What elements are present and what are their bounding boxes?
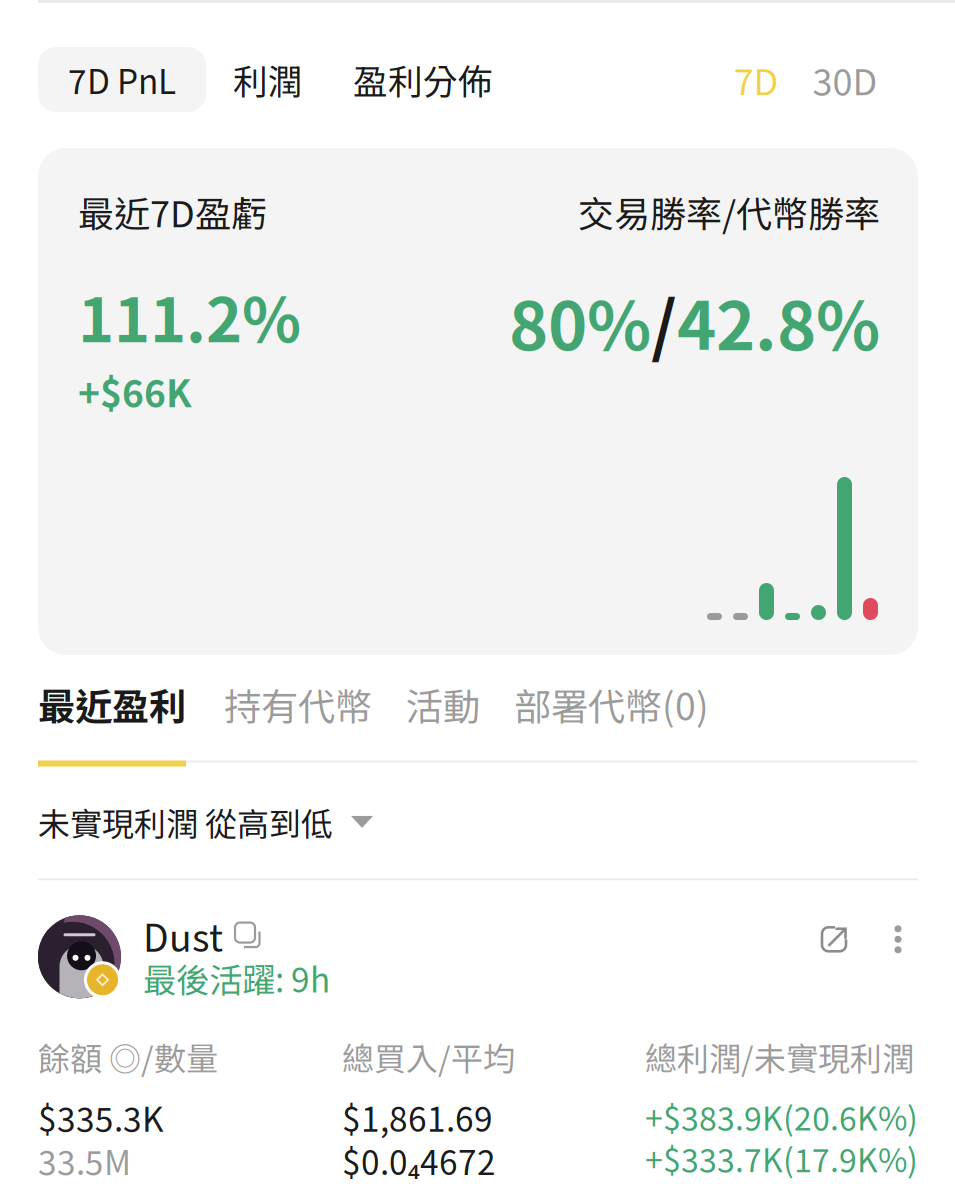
staticText: 未實現利潤 從高到低 [38,804,333,839]
staticText: 80% [509,285,651,357]
staticText: $1,861.69 [342,1099,493,1135]
staticText: 部署代幣(0) [514,684,709,724]
button[interactable]: Open externally [810,915,858,963]
staticText: 最近盈利 [38,684,186,724]
staticText: 持有代幣 [224,684,372,724]
staticText: 利潤 [233,61,303,98]
button[interactable]: 盈利分佈 [330,47,516,112]
staticText: Dust [143,915,223,956]
button[interactable]: More options [878,915,918,963]
staticText: 30D [812,60,877,99]
staticText: 餘額 ◎/數量 [38,1039,218,1074]
staticText: 7D PnL [68,61,176,98]
button[interactable]: 7D [709,47,803,112]
staticText: +$66K [78,371,192,411]
staticText: 7D [733,60,778,99]
staticText: $335.3K [38,1099,164,1135]
staticText: 總買入/平均 [342,1039,515,1074]
button[interactable]: 30D [803,47,887,112]
staticText: 42.8% [677,285,880,357]
button[interactable]: 利潤 [206,47,330,112]
staticText: 盈利分佈 [353,61,493,98]
staticText: / [651,285,677,357]
button[interactable]: 活動 [406,684,514,724]
button[interactable]: 7D PnL [38,47,206,112]
staticText: 33.5M [38,1142,131,1178]
staticText: 111.2% [78,282,301,349]
staticText: 總利潤/未實現利潤 [645,1039,914,1074]
staticText: +$333.7K(17.9K%) [645,1141,918,1176]
staticText: +$383.9K(20.6K%) [645,1099,918,1134]
button[interactable]: 未實現利潤 從高到低 [38,804,918,839]
staticText: 最近7D盈虧 [78,192,267,231]
staticText: 最後活躍: 9h [143,960,330,996]
button[interactable]: 部署代幣(0) [514,684,709,724]
staticText: 交易勝率/代幣勝率 [578,192,880,231]
button[interactable]: 最近盈利 [38,684,224,724]
button[interactable]: 持有代幣 [224,684,406,724]
staticText: $0.0₄4672 [342,1142,496,1179]
staticText: 活動 [406,684,480,724]
